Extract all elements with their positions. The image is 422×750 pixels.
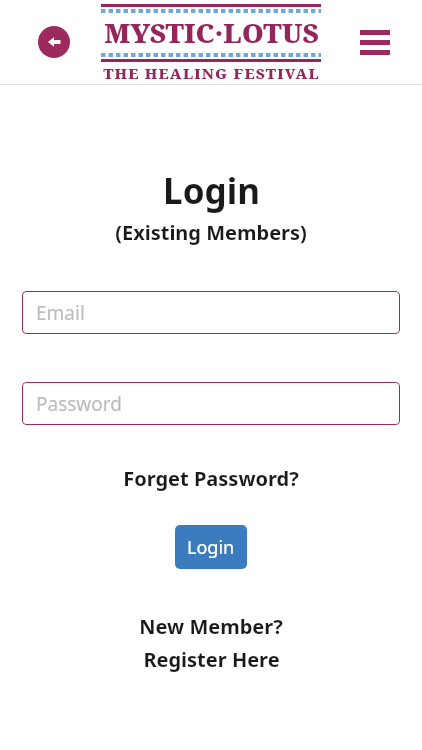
button[interactable]: Forget Password? xyxy=(115,461,307,496)
staticText: Login xyxy=(163,167,260,215)
button[interactable]: Back xyxy=(38,26,70,58)
staticText: Forget Password? xyxy=(123,465,299,492)
staticText: Register Here xyxy=(143,646,280,673)
staticText: (Existing Members) xyxy=(115,219,307,246)
staticText: Login xyxy=(187,535,235,560)
button[interactable]: Menu xyxy=(358,25,392,59)
staticText: Password xyxy=(36,391,122,417)
staticText: MYSTIC·LOTUS xyxy=(104,14,319,51)
button[interactable]: Email xyxy=(22,291,400,334)
staticText: THE HEALING FESTIVAL xyxy=(103,63,320,83)
button[interactable]: Login xyxy=(175,525,247,569)
staticText: Email xyxy=(36,300,85,326)
staticText: New Member? xyxy=(139,613,283,640)
button[interactable]: Password xyxy=(22,382,400,425)
button[interactable]: New Member? xyxy=(131,611,291,675)
